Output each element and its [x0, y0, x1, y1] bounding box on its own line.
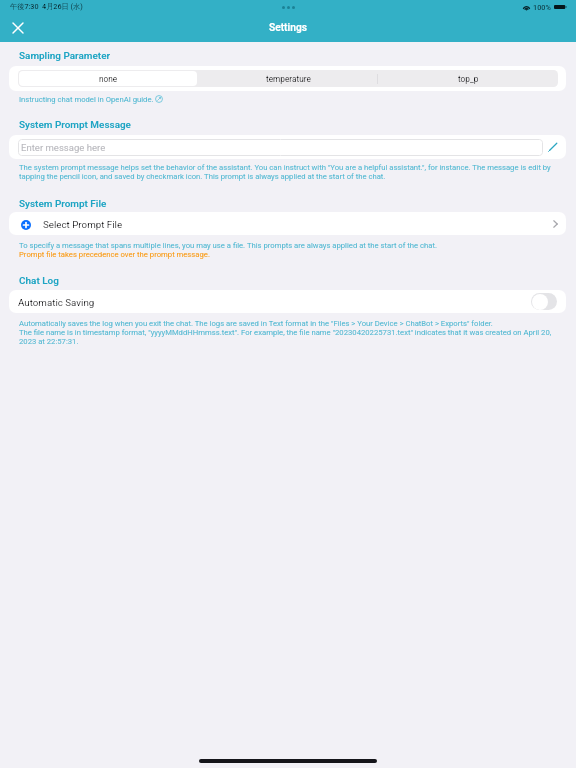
- staticText: 午後7:30 4月26日 (水): [10, 2, 83, 11]
- staticText: 100%: [533, 3, 551, 12]
- button[interactable]: Close: [8, 18, 28, 38]
- button[interactable]: none: [19, 71, 197, 86]
- button[interactable]: top_p: [379, 71, 557, 86]
- staticText: The file name is in timestamp format, "y…: [19, 328, 552, 337]
- staticText: To specify a message that spans multiple…: [19, 241, 438, 250]
- button[interactable]: Automatic Saving toggle: [531, 293, 557, 310]
- staticText: Enter message here: [21, 142, 106, 153]
- staticText: Select Prompt File: [43, 219, 123, 230]
- staticText: none: [99, 74, 118, 84]
- button[interactable]: Enter message here: [18, 139, 543, 156]
- staticText: Sampling Parameter: [19, 50, 111, 62]
- staticText: Prompt file takes precedence over the pr…: [19, 250, 210, 259]
- button[interactable]: Edit: [544, 138, 562, 156]
- staticText: Automatically saves the log when you exi…: [19, 319, 493, 328]
- staticText: System Prompt Message: [19, 119, 131, 131]
- staticText: tapping the pencil icon, and saved by ch…: [19, 172, 386, 181]
- staticText: Automatic Saving: [18, 297, 95, 308]
- staticText: The system prompt message helps set the …: [19, 163, 551, 172]
- staticText: Settings: [269, 22, 307, 34]
- staticText: temperature: [266, 74, 311, 84]
- button[interactable]: Select Prompt File: [9, 212, 566, 235]
- staticText: Instructing chat model in OpenAI guide.: [19, 95, 154, 104]
- staticText: 2023 at 22:57:31.: [19, 337, 79, 346]
- button[interactable]: OpenAI guide: [155, 95, 163, 103]
- button[interactable]: temperature: [199, 71, 377, 86]
- staticText: Chat Log: [19, 275, 59, 287]
- staticText: top_p: [458, 74, 479, 84]
- staticText: System Prompt File: [19, 198, 107, 210]
